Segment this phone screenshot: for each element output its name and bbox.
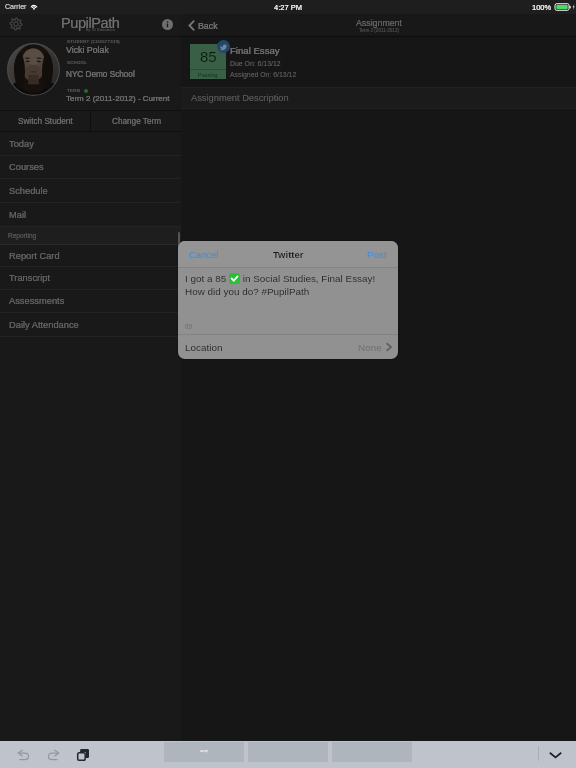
button[interactable]: Change Term (91, 111, 181, 131)
button[interactable]: Post (362, 245, 392, 264)
staticText: PupilPath (61, 15, 120, 31)
staticText: Final Essay (230, 45, 280, 56)
staticText: SCHOOL (67, 60, 88, 65)
button[interactable]: Transcript (0, 267, 181, 289)
staticText: Courses (9, 162, 44, 172)
staticText: Term 2 (2011-2012) - Current (66, 94, 170, 103)
staticText: Cancel (189, 249, 219, 260)
staticText: Daily Attendance (9, 320, 79, 330)
staticText: NYC Demo School (66, 70, 135, 79)
button[interactable]: Mail (0, 203, 181, 226)
staticText: “” (200, 748, 208, 757)
staticText: Twitter (273, 249, 304, 260)
button[interactable]: Location (178, 335, 398, 359)
staticText: Switch Student (18, 117, 73, 126)
button[interactable]: Paste (72, 744, 94, 766)
staticText: Assigned On: 6/13/12 (230, 71, 297, 79)
staticText: Vicki Polak (66, 45, 109, 55)
button[interactable]: Switch Student (0, 111, 90, 131)
button[interactable]: Today (0, 132, 181, 155)
staticText: in Social Studies, Final Essay! (240, 273, 376, 284)
staticText: Report Card (9, 251, 60, 261)
staticText: Back (198, 21, 218, 31)
button[interactable]: Hide keyboard (544, 744, 566, 766)
button[interactable]: Settings (8, 16, 24, 32)
staticText: By IO Education (86, 28, 115, 32)
button[interactable]: Info (160, 17, 174, 31)
staticText: Passing (198, 72, 218, 78)
staticText: Post (367, 249, 387, 260)
staticText: 4:27 PM (274, 3, 302, 11)
button[interactable]: Redo (42, 744, 64, 766)
staticText: Change Term (112, 117, 161, 126)
staticText: 85 (200, 48, 217, 65)
button[interactable]: Undo (12, 744, 34, 766)
button[interactable]: Courses (0, 156, 181, 178)
staticText: TERM (67, 88, 81, 93)
staticText: Transcript (9, 273, 50, 283)
staticText: 100% (532, 3, 552, 11)
button[interactable]: Schedule (0, 179, 181, 202)
staticText: Due On: 6/13/12 (230, 60, 281, 68)
staticText: How did you do? #PupilPath (185, 286, 310, 297)
staticText: Today (9, 139, 34, 149)
staticText: Location (185, 342, 223, 353)
staticText: Reporting (8, 232, 37, 239)
staticText: Carrier (5, 3, 27, 11)
staticText: STUDENT (13/6577339) (67, 39, 121, 44)
staticText: Term 2 (2011-2012) (359, 28, 400, 33)
button[interactable]: Report Card (0, 245, 181, 266)
staticText: None (358, 342, 382, 353)
button[interactable]: Assessments (0, 290, 181, 312)
staticText: Assignment Description (191, 93, 289, 103)
button[interactable]: Cancel (184, 245, 224, 264)
staticText: Mail (9, 210, 27, 220)
button[interactable]: Back (185, 17, 221, 34)
staticText: Schedule (9, 186, 48, 196)
staticText: 69 (185, 323, 193, 330)
staticText: Assignment (356, 18, 402, 28)
button[interactable]: “” (164, 742, 244, 762)
staticText: Assessments (9, 296, 65, 306)
staticText: I got a 85 (185, 273, 229, 284)
button[interactable]: Daily Attendance (0, 313, 181, 336)
